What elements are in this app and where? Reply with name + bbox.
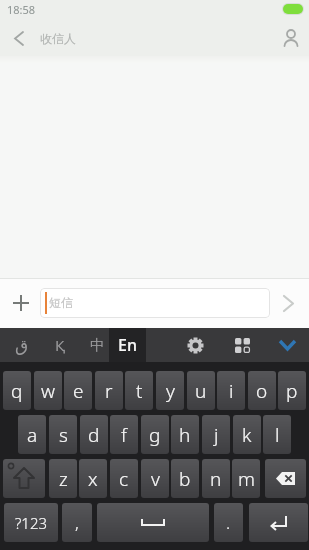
button[interactable] <box>273 288 303 318</box>
staticText: u <box>195 378 207 404</box>
staticText: i <box>229 378 234 404</box>
staticText: 短信 <box>49 295 73 310</box>
button[interactable]: a <box>18 415 46 454</box>
staticText: b <box>179 466 191 492</box>
staticText: . <box>226 511 231 534</box>
button[interactable]: c <box>110 459 138 498</box>
staticText: 收信人 <box>40 31 76 46</box>
button[interactable]: p <box>278 371 306 410</box>
staticText: , <box>75 511 79 534</box>
button[interactable]: 短信 <box>40 288 270 318</box>
button[interactable] <box>272 330 302 360</box>
button[interactable]: n <box>202 459 230 498</box>
staticText: v <box>151 466 160 492</box>
button[interactable]: k <box>233 415 261 454</box>
staticText: k <box>242 422 252 448</box>
button[interactable] <box>249 503 308 542</box>
staticText: o <box>256 378 268 404</box>
staticText: En <box>118 334 137 356</box>
button[interactable]: . <box>214 503 243 542</box>
staticText: ق <box>15 335 29 355</box>
button[interactable] <box>3 459 45 498</box>
button[interactable]: e <box>64 371 92 410</box>
button[interactable] <box>5 24 33 52</box>
staticText: l <box>275 422 280 448</box>
staticText: g <box>149 422 161 448</box>
staticText: 中 <box>90 336 105 355</box>
staticText: r <box>105 378 113 404</box>
button[interactable]: g <box>141 415 169 454</box>
staticText: z <box>59 466 68 492</box>
staticText: f <box>121 422 127 448</box>
staticText: d <box>88 422 100 448</box>
button[interactable]: y <box>156 371 184 410</box>
button[interactable] <box>180 330 210 360</box>
staticText: a <box>27 422 38 448</box>
button[interactable]: v <box>141 459 169 498</box>
button[interactable] <box>97 503 209 542</box>
button[interactable]: z <box>49 459 77 498</box>
button[interactable]: f <box>110 415 138 454</box>
staticText: n <box>210 466 222 492</box>
button[interactable]: ق <box>6 328 38 362</box>
staticText: m <box>238 466 255 492</box>
staticText: x <box>88 466 98 492</box>
button[interactable]: d <box>80 415 108 454</box>
button[interactable]: q <box>3 371 31 410</box>
staticText: 18:58 <box>7 2 36 17</box>
button[interactable] <box>6 288 36 318</box>
staticText: ?123 <box>15 513 48 533</box>
button[interactable]: x <box>79 459 107 498</box>
button[interactable]: h <box>171 415 199 454</box>
button[interactable]: j <box>202 415 230 454</box>
button[interactable]: o <box>248 371 276 410</box>
button[interactable]: l <box>263 415 291 454</box>
button[interactable] <box>265 459 306 498</box>
staticText: j <box>214 422 219 448</box>
button[interactable]: u <box>187 371 215 410</box>
button[interactable]: w <box>34 371 62 410</box>
button[interactable]: ?123 <box>4 503 58 542</box>
staticText: q <box>11 378 23 404</box>
staticText: h <box>179 422 191 448</box>
staticText: y <box>166 378 175 404</box>
button[interactable]: Қ <box>44 328 76 362</box>
staticText: w <box>41 378 55 404</box>
button[interactable]: 中 <box>84 328 110 362</box>
staticText: p <box>286 378 298 404</box>
button[interactable]: En <box>109 328 146 362</box>
button[interactable]: b <box>171 459 199 498</box>
button[interactable]: s <box>49 415 77 454</box>
button[interactable]: i <box>217 371 245 410</box>
button[interactable]: t <box>125 371 153 410</box>
staticText: c <box>119 466 129 492</box>
button[interactable] <box>275 22 307 54</box>
staticText: Қ <box>55 335 66 355</box>
staticText: s <box>59 422 68 448</box>
staticText: t <box>136 378 143 404</box>
button[interactable] <box>227 330 257 360</box>
staticText: e <box>73 378 84 404</box>
button[interactable]: r <box>95 371 123 410</box>
button[interactable]: , <box>62 503 92 542</box>
button[interactable]: m <box>232 459 260 498</box>
